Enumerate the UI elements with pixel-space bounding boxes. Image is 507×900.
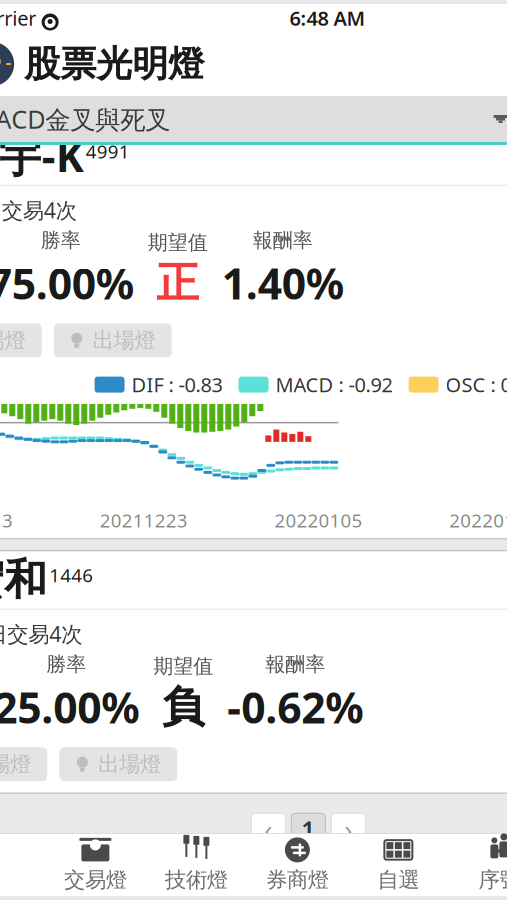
staticText: 負	[162, 681, 205, 733]
staticText: 1	[301, 813, 315, 845]
staticText: 報酬率	[253, 228, 313, 253]
staticText: MACD : -0.92	[276, 371, 393, 398]
button[interactable]: 券商燈	[247, 834, 348, 896]
button[interactable]: 1	[291, 813, 325, 845]
staticText: 勝率	[41, 228, 81, 253]
button[interactable]: 交易燈	[45, 834, 146, 896]
staticText: 技術燈	[165, 867, 228, 893]
staticText: 出場燈	[98, 751, 161, 777]
staticText: 期望值	[148, 230, 208, 255]
staticText: 1446	[49, 563, 93, 587]
button[interactable]: 出場燈	[54, 323, 172, 357]
staticText: 75.00%	[0, 255, 134, 311]
staticText: DIF : -0.83	[132, 371, 223, 398]
staticText: 20211213	[0, 508, 13, 533]
staticText: 券商燈	[266, 867, 329, 893]
staticText: 6:48 AM	[289, 5, 365, 31]
button[interactable]: 進場燈	[0, 323, 42, 357]
staticText: 4991	[86, 139, 130, 164]
staticText: 交易燈	[64, 867, 127, 893]
button[interactable]: 序號	[449, 834, 507, 896]
staticText: 正	[156, 257, 199, 309]
button[interactable]: 出場燈	[59, 747, 177, 781]
button[interactable]: 進場燈	[0, 747, 47, 781]
staticText: 報酬率	[265, 652, 325, 677]
staticText: -0.62%	[227, 679, 363, 735]
staticText: 1.40%	[222, 255, 344, 311]
staticText: 進場燈	[0, 751, 31, 777]
staticText: 25.00%	[0, 679, 139, 735]
staticText: 20211223	[100, 508, 188, 533]
staticText: ‹	[264, 811, 272, 847]
staticText: 近240日交易4次	[0, 620, 82, 648]
staticText: 近240日交易4次	[0, 196, 77, 224]
button[interactable]: 下一頁	[331, 813, 365, 845]
button[interactable]: 自選	[348, 834, 449, 896]
staticText: 出場燈	[93, 327, 156, 353]
button[interactable]: 上一頁	[251, 813, 285, 845]
button[interactable]: MACD金叉與死叉	[0, 96, 507, 142]
staticText: 進場燈	[0, 327, 26, 353]
staticText: OSC : 0.09	[446, 371, 507, 398]
staticText: 環宇-K	[0, 127, 84, 184]
staticText: 股票光明燈	[24, 42, 204, 86]
staticText: 勝率	[46, 652, 86, 677]
staticText: 序號	[478, 867, 507, 893]
button[interactable]: 技術燈	[146, 834, 247, 896]
staticText: MACD金叉與死叉	[0, 102, 170, 136]
staticText: ›	[344, 811, 352, 847]
staticText: 20220117	[449, 508, 507, 533]
staticText: 自選	[377, 867, 419, 893]
staticText: 期望值	[153, 654, 213, 679]
staticText: 宏和	[0, 553, 47, 606]
staticText: 20220105	[275, 508, 363, 533]
staticText: Carrier	[0, 5, 36, 31]
